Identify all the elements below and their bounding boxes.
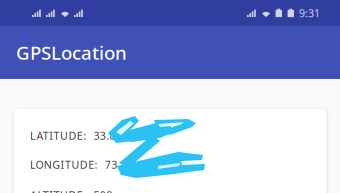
staticText: LATITUDE: 33.8 — [30, 128, 116, 143]
staticText: 9:31 — [299, 6, 320, 20]
staticText: ALTITUDE: 508 — [30, 188, 112, 193]
staticText: LONGITUDE: 73.1 — [30, 157, 127, 172]
staticText: GPSLocation — [16, 40, 127, 65]
